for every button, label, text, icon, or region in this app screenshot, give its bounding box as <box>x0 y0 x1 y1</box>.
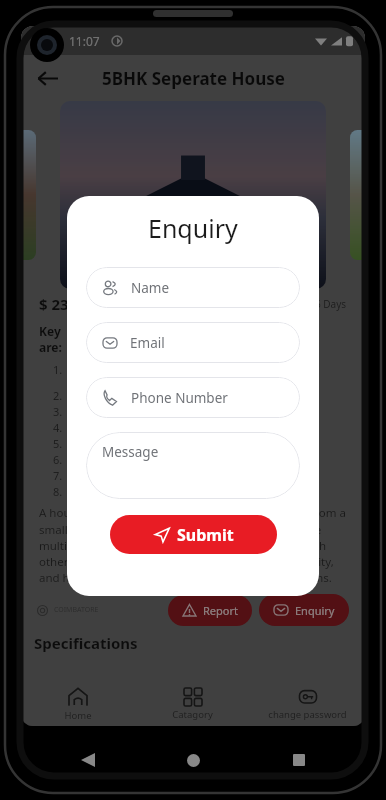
staticText: A house can vary greatly in size and sty… <box>39 505 347 585</box>
staticText: 8. <box>53 484 63 499</box>
button[interactable]: Submit <box>110 515 277 554</box>
staticText: Message <box>102 443 159 461</box>
staticText: 5. <box>53 436 63 451</box>
staticText: 3. <box>53 404 63 419</box>
staticText: Report <box>203 603 238 618</box>
button[interactable]: Back <box>27 58 67 98</box>
staticText: $ 23 <box>39 294 69 314</box>
button[interactable]: Message <box>86 432 300 499</box>
button[interactable]: Name <box>86 267 300 308</box>
staticText: 6 Days <box>315 297 347 311</box>
button[interactable]: Home <box>175 742 211 778</box>
staticText: 4. <box>53 420 63 435</box>
staticText: Catagory <box>172 708 213 721</box>
staticText: Name <box>131 279 170 297</box>
button[interactable]: Recent apps <box>281 742 317 778</box>
staticText: COIMBATORE <box>54 605 99 615</box>
button[interactable]: Catagory <box>135 681 250 726</box>
staticText: 7. <box>53 468 63 483</box>
button[interactable]: Phone Number <box>86 377 300 418</box>
staticText: Phone Number <box>131 389 228 407</box>
staticText: 11:07 <box>69 33 100 49</box>
button[interactable]: Back <box>70 742 106 778</box>
staticText: 2. <box>53 388 63 403</box>
staticText: Email <box>130 334 165 352</box>
staticText: 1. <box>53 362 63 377</box>
button[interactable]: Email <box>86 322 300 363</box>
staticText: change password <box>268 708 347 721</box>
staticText: are: <box>39 339 62 355</box>
staticText: Home <box>64 709 92 722</box>
button[interactable]: Report <box>168 595 252 626</box>
button[interactable]: change password <box>250 681 365 726</box>
staticText: Key <box>39 323 61 339</box>
staticText: Specifications <box>34 633 138 653</box>
staticText: Enquiry <box>148 211 238 245</box>
staticText: 5BHK Seperate House <box>102 67 285 90</box>
staticText: Enquiry <box>295 603 335 618</box>
staticText: Submit <box>177 524 234 546</box>
button[interactable]: Enquiry <box>259 594 349 626</box>
button[interactable]: Home <box>21 681 135 726</box>
staticText: 6. <box>53 452 63 467</box>
